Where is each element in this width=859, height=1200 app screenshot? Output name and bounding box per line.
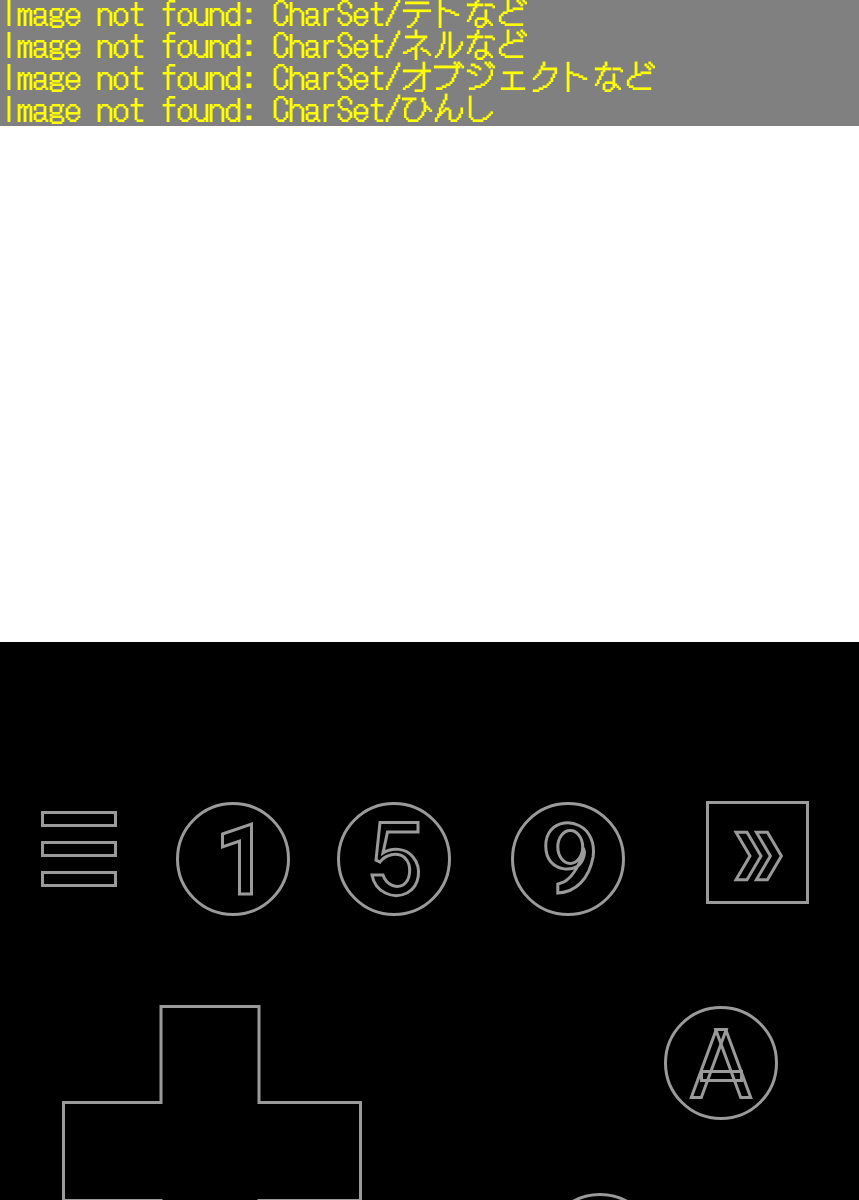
button[interactable]: Slot 1 [176,802,290,916]
button[interactable]: Directional pad [62,1005,364,1200]
button[interactable]: Slot 9 [511,802,625,916]
staticText: Image not found: CharSet/オブジェクトなど [1,52,658,98]
staticText: Image not found: CharSet/ネルなど [1,20,530,66]
button[interactable]: Button A [664,1006,778,1120]
staticText: Image not found: CharSet/ひんし [1,84,498,130]
staticText: Image not found: CharSet/テトなど [1,0,530,34]
button[interactable]: Fast forward [706,801,809,904]
button[interactable]: Menu [41,811,117,887]
button[interactable]: Slot 5 [337,802,451,916]
button[interactable]: Button B [543,1193,657,1200]
